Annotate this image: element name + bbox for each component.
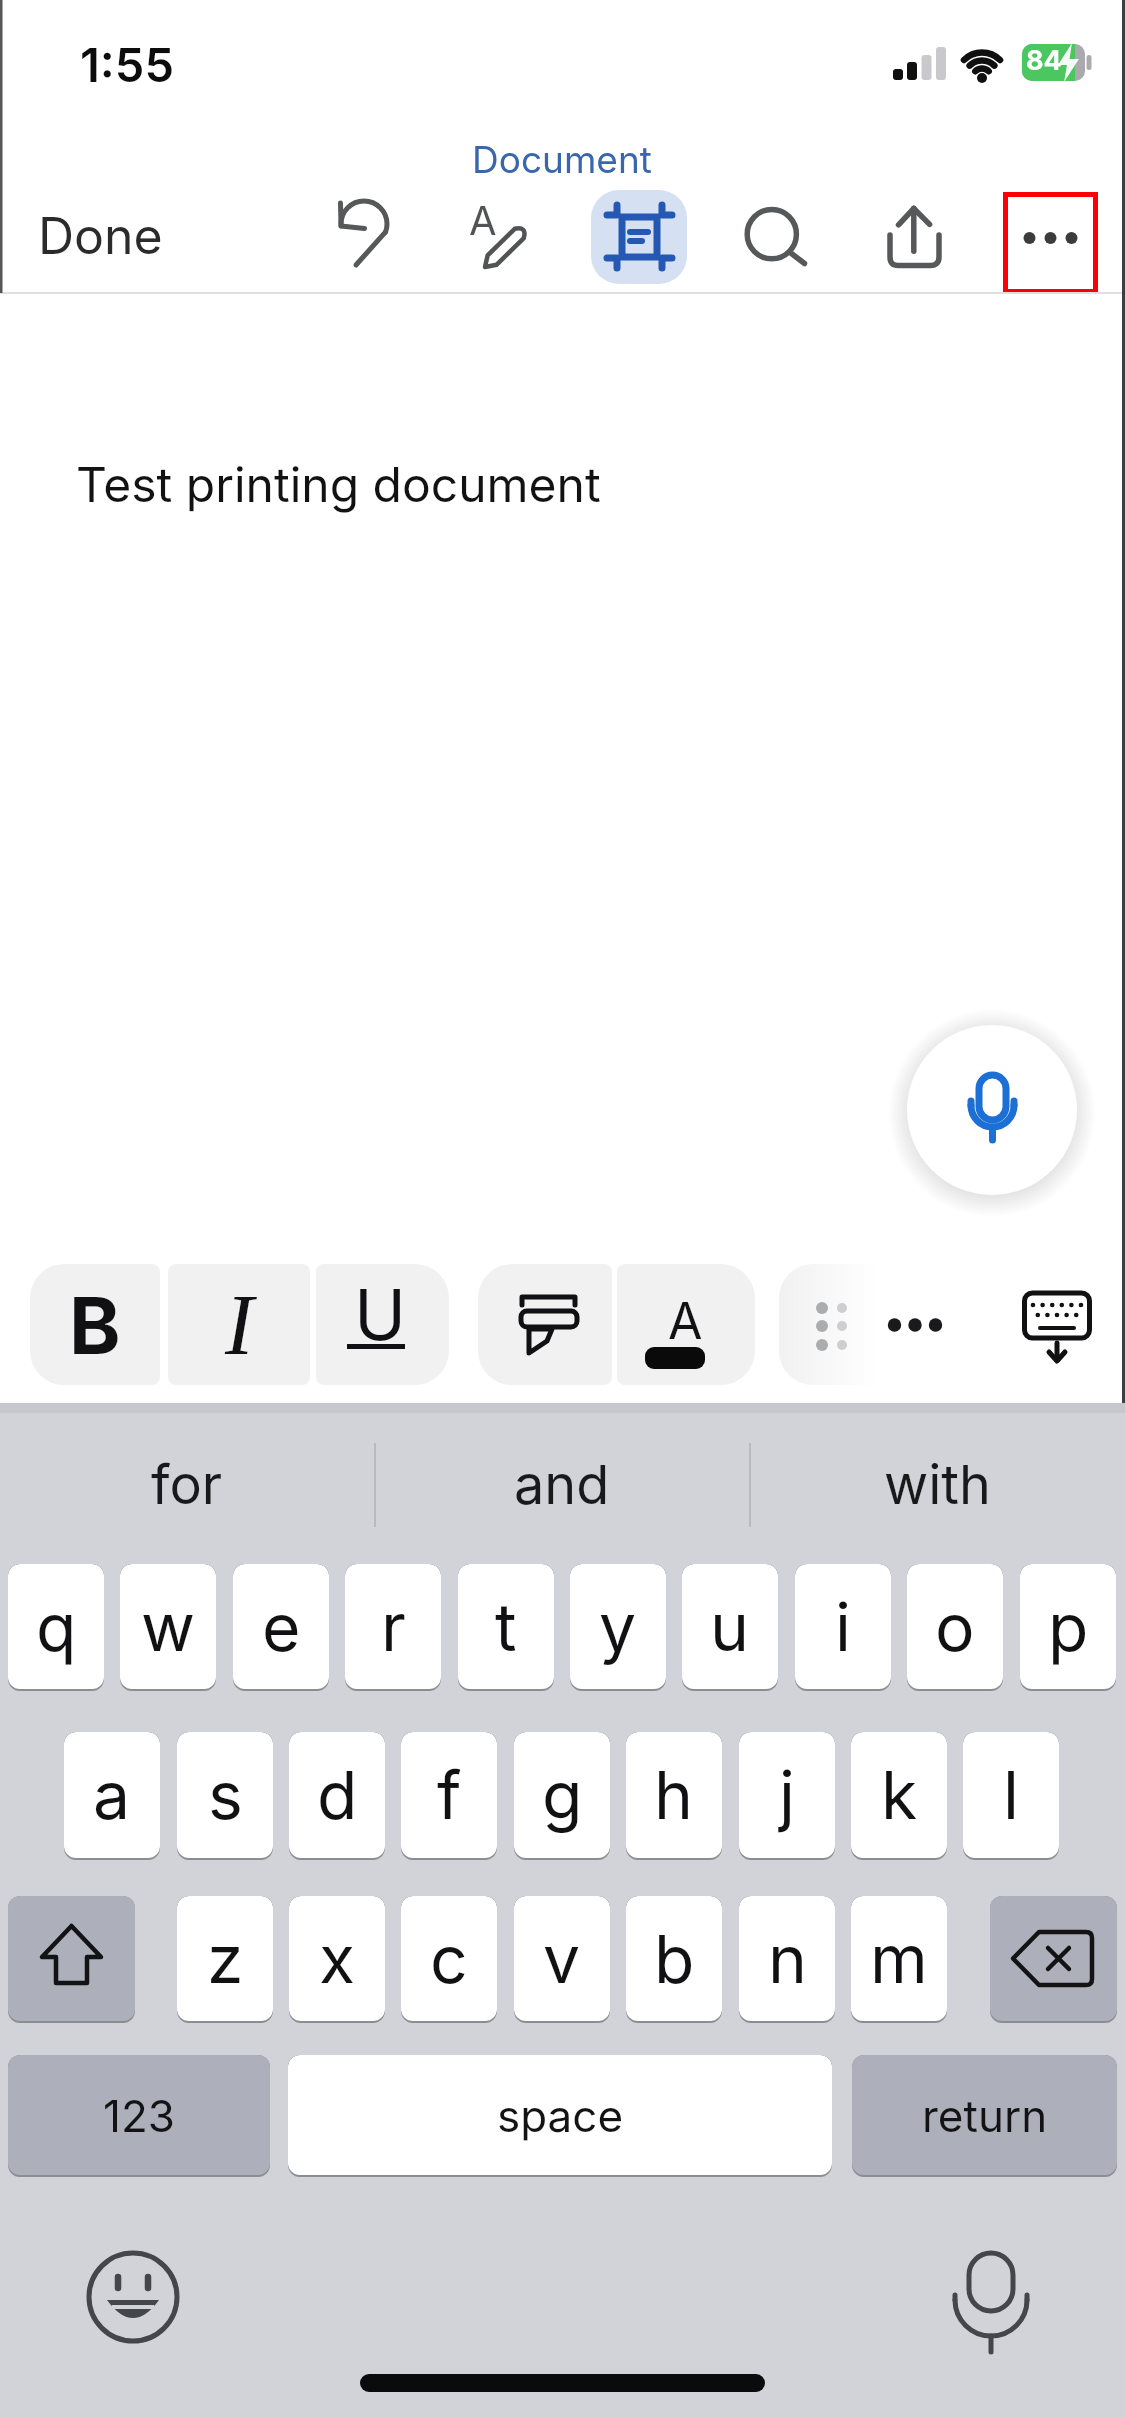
button[interactable]: z — [177, 1896, 273, 2023]
button[interactable] — [85, 2250, 185, 2350]
button[interactable]: y — [570, 1564, 666, 1691]
button[interactable]: d — [289, 1732, 385, 1860]
staticText: i — [835, 1587, 851, 1667]
button[interactable]: space — [288, 2055, 832, 2177]
button[interactable]: u — [682, 1564, 778, 1691]
button[interactable]: g — [514, 1732, 610, 1860]
staticText: q — [36, 1587, 77, 1667]
button[interactable]: v — [514, 1896, 610, 2023]
staticText: k — [881, 1755, 918, 1835]
button[interactable] — [990, 1896, 1117, 2023]
button[interactable]: Done — [20, 196, 180, 286]
button[interactable]: B — [30, 1264, 160, 1385]
button[interactable]: r — [345, 1564, 441, 1691]
button[interactable] — [868, 191, 963, 286]
button[interactable] — [315, 191, 410, 286]
staticText: b — [654, 1919, 695, 1999]
button[interactable]: n — [739, 1896, 835, 2023]
staticText: U — [354, 1272, 407, 1357]
staticText: t — [495, 1587, 517, 1667]
button[interactable] — [731, 191, 826, 286]
staticText: w — [141, 1587, 196, 1667]
button[interactable]: a — [64, 1732, 160, 1860]
button[interactable]: b — [626, 1896, 722, 2023]
staticText: l — [1003, 1755, 1019, 1835]
staticText: j — [779, 1755, 795, 1835]
staticText: n — [768, 1919, 807, 1999]
button[interactable]: A — [617, 1264, 755, 1385]
button[interactable]: f — [401, 1732, 497, 1860]
staticText: e — [262, 1587, 301, 1667]
staticText: I — [225, 1277, 254, 1372]
staticText: c — [430, 1919, 468, 1999]
staticText: u — [710, 1587, 750, 1667]
staticText: with — [884, 1452, 991, 1517]
staticText: A — [668, 1291, 703, 1351]
button[interactable]: w — [120, 1564, 216, 1691]
button[interactable] — [940, 2240, 1044, 2360]
staticText: Document — [472, 137, 652, 182]
staticText: A — [469, 196, 497, 244]
button[interactable]: 123 — [8, 2055, 270, 2177]
staticText: Done — [38, 206, 163, 266]
staticText: g — [542, 1755, 583, 1835]
staticText: Test printing document — [76, 455, 601, 513]
button[interactable]: U — [316, 1264, 449, 1385]
staticText: and — [514, 1452, 610, 1517]
button[interactable] — [1010, 1285, 1100, 1375]
staticText: a — [93, 1755, 131, 1835]
staticText: for — [151, 1452, 223, 1517]
button[interactable]: o — [907, 1564, 1003, 1691]
button[interactable]: l — [963, 1732, 1059, 1860]
staticText: 84 — [1026, 44, 1062, 77]
button[interactable]: q — [8, 1564, 104, 1691]
staticText: 1:55 — [80, 36, 174, 93]
button[interactable] — [478, 1264, 612, 1385]
button[interactable]: i — [795, 1564, 891, 1691]
button[interactable]: x — [289, 1896, 385, 2023]
button[interactable]: e — [233, 1564, 329, 1691]
staticText: r — [381, 1587, 406, 1667]
button[interactable]: c — [401, 1896, 497, 2023]
button[interactable] — [8, 1896, 135, 2023]
staticText: z — [207, 1919, 244, 1999]
button[interactable]: j — [739, 1732, 835, 1860]
staticText: x — [319, 1919, 356, 1999]
staticText: m — [870, 1919, 928, 1999]
button[interactable]: h — [626, 1732, 722, 1860]
button[interactable]: k — [851, 1732, 947, 1860]
staticText: s — [208, 1755, 243, 1835]
button[interactable]: return — [852, 2055, 1117, 2177]
staticText: f — [437, 1755, 462, 1835]
staticText: h — [654, 1755, 694, 1835]
staticText: space — [497, 2089, 624, 2142]
button[interactable]: I — [168, 1264, 310, 1385]
staticText: p — [1048, 1587, 1089, 1667]
button[interactable]: A — [452, 191, 547, 286]
button[interactable] — [905, 1023, 1079, 1197]
staticText: o — [935, 1587, 975, 1667]
staticText: y — [599, 1587, 637, 1667]
staticText: 123 — [103, 2089, 175, 2142]
button[interactable] — [874, 1285, 956, 1365]
staticText: d — [317, 1755, 358, 1835]
staticText: v — [543, 1919, 581, 1999]
button[interactable]: s — [177, 1732, 273, 1860]
staticText: B — [69, 1278, 121, 1372]
button[interactable]: p — [1020, 1564, 1116, 1691]
button[interactable]: m — [851, 1896, 947, 2023]
button[interactable] — [591, 190, 687, 284]
button[interactable] — [1003, 192, 1098, 294]
button[interactable]: t — [458, 1564, 554, 1691]
staticText: return — [922, 2089, 1048, 2142]
